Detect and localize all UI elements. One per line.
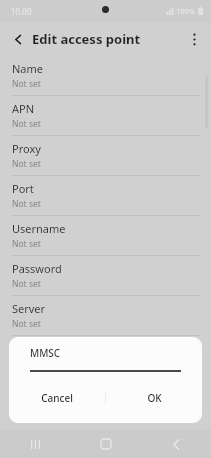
button[interactable]: Recent apps <box>0 430 71 458</box>
staticText: Server <box>12 301 46 316</box>
staticText: Not set <box>12 158 41 170</box>
staticText: Not set <box>12 238 41 250</box>
staticText: MMSC <box>12 341 45 356</box>
button[interactable]: Port <box>0 176 211 215</box>
staticText: MMSC <box>30 346 61 360</box>
button[interactable]: APN <box>0 96 211 135</box>
button[interactable]: OK <box>106 373 202 423</box>
button[interactable]: More options <box>183 28 205 50</box>
button[interactable]: Password <box>0 256 211 295</box>
button[interactable]: Cancel <box>9 373 105 423</box>
staticText: OK <box>147 391 162 405</box>
button[interactable]: Home <box>71 430 141 458</box>
button[interactable]: Name <box>0 56 211 95</box>
staticText: Cancel <box>41 391 73 405</box>
button[interactable]: Username <box>0 216 211 255</box>
staticText: Port <box>12 181 34 196</box>
staticText: Edit access point <box>32 30 141 48</box>
staticText: Proxy <box>12 141 41 156</box>
staticText: Username <box>12 221 66 236</box>
button[interactable]: Proxy <box>0 136 211 175</box>
button[interactable]: Server <box>0 296 211 335</box>
staticText: Not set <box>12 78 41 90</box>
staticText: Not set <box>12 118 41 130</box>
staticText: Password <box>12 261 62 276</box>
staticText: Not set <box>12 278 41 290</box>
staticText: APN <box>12 101 35 116</box>
button[interactable]: MMSC <box>0 336 211 375</box>
staticText: Name <box>12 61 44 76</box>
staticText: Not set <box>12 198 41 210</box>
staticText: Not set <box>12 318 41 330</box>
button[interactable]: Back <box>7 28 29 50</box>
staticText: 100% <box>176 6 196 16</box>
staticText: 10.00 <box>11 6 32 17</box>
